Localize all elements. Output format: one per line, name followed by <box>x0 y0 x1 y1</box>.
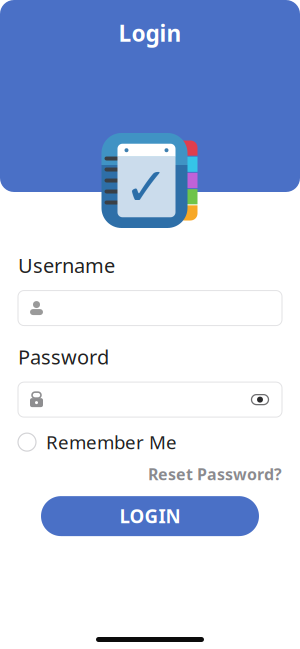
staticText: ✓ <box>124 157 169 217</box>
staticText: Username <box>18 252 115 279</box>
staticText: Password <box>18 344 109 370</box>
staticText: Remember Me <box>46 430 177 454</box>
staticText: LOGIN <box>119 504 180 528</box>
button[interactable]: Remember Me <box>18 431 282 453</box>
button[interactable]: LOGIN <box>41 496 259 536</box>
button[interactable]: Show password <box>248 388 272 412</box>
staticText: Reset Password? <box>148 463 282 485</box>
staticText: Login <box>118 18 181 48</box>
button[interactable]: Reset Password? <box>18 466 282 482</box>
